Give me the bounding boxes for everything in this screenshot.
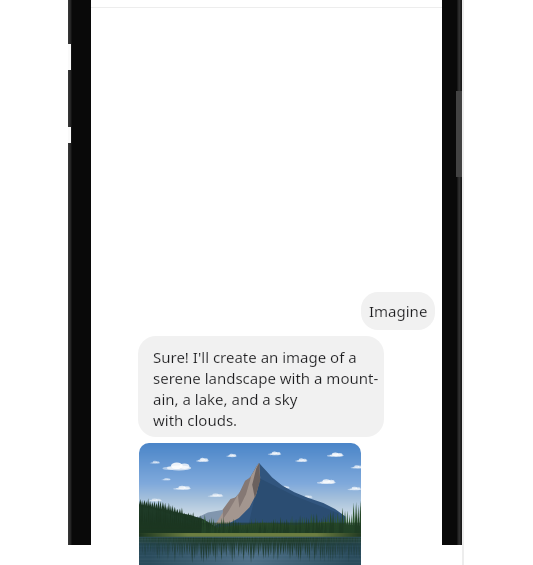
staticText: Sure! I'll create an image of a serene l… [153, 347, 379, 431]
button[interactable]: Generated landscape image [139, 443, 361, 565]
staticText: Imagine [369, 301, 428, 321]
button[interactable]: Imagine [361, 292, 435, 330]
button[interactable]: Sure! I'll create an image of a serene l… [138, 336, 384, 437]
